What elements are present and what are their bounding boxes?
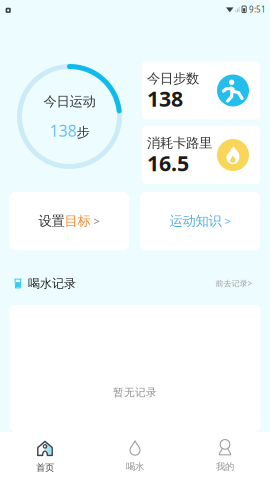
staticText: 喝水记录	[28, 276, 76, 291]
staticText: 暂无记录	[113, 386, 157, 399]
button[interactable]: 我的	[180, 432, 270, 480]
staticText: 138	[147, 84, 183, 113]
button[interactable]: 设置	[9, 192, 129, 250]
staticText: 前去记录	[215, 279, 247, 288]
button[interactable]: 首页	[0, 432, 90, 480]
staticText: 运动知识	[169, 213, 221, 229]
staticText: >	[221, 214, 230, 228]
staticText: >	[247, 278, 252, 289]
staticText: 设置	[38, 213, 64, 229]
staticText: 目标	[64, 213, 90, 229]
button[interactable]: 前去记录	[215, 278, 252, 289]
staticText: >	[90, 214, 99, 228]
staticText: 今日运动	[43, 93, 95, 110]
button[interactable]: 喝水	[90, 432, 180, 480]
staticText: 我的	[216, 461, 234, 472]
staticText: 16.5	[147, 149, 189, 177]
staticText: 138	[49, 120, 76, 141]
staticText: 喝水	[126, 461, 144, 472]
staticText: 消耗卡路里	[147, 135, 212, 151]
staticText: 首页	[36, 462, 54, 473]
staticText: 今日步数	[147, 70, 199, 87]
staticText: 9:51	[249, 4, 266, 15]
button[interactable]: 运动知识	[140, 192, 260, 250]
staticText: 步	[76, 124, 89, 140]
